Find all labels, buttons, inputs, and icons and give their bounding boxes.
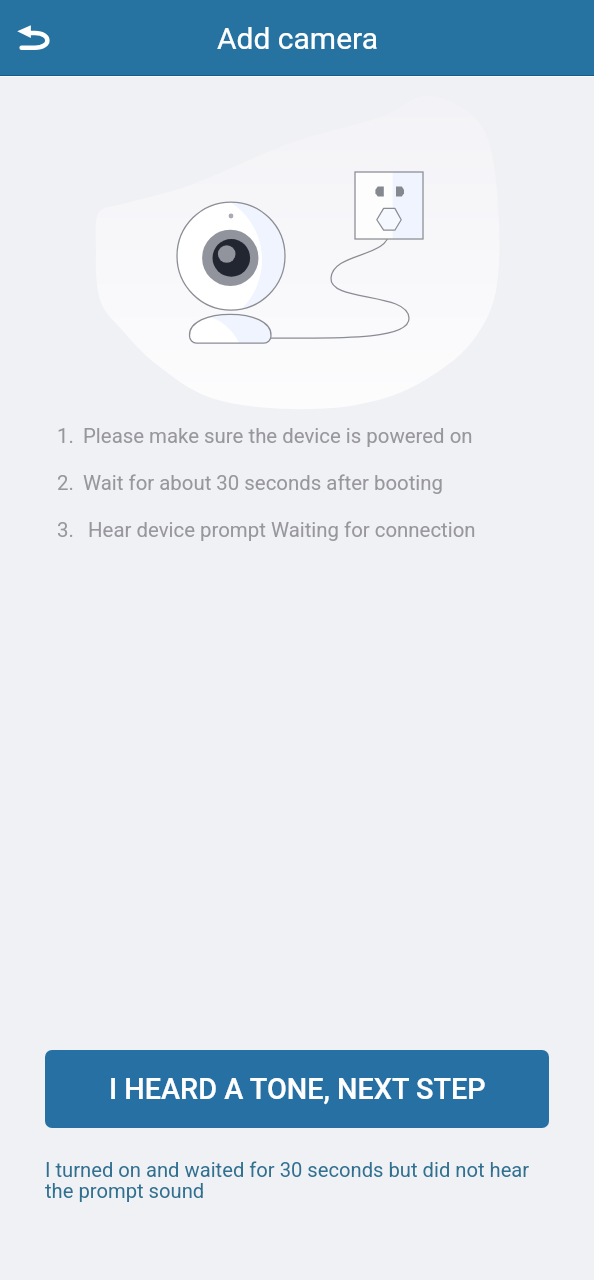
staticText: I HEARD A TONE, NEXT STEP [109,1072,486,1106]
button[interactable]: I HEARD A TONE, NEXT STEP [45,1050,549,1128]
button[interactable]: I turned on and waited for 30 seconds bu… [45,1158,546,1203]
staticText: Wait for about 30 seconds after booting [83,471,444,495]
staticText: Please make sure the device is powered o… [83,424,473,448]
staticText: Add camera [217,21,378,56]
staticText: 1. [57,424,74,448]
staticText: 3. [57,518,74,542]
staticText: 2. [57,471,74,495]
staticText: Hear device prompt Waiting for connectio… [83,518,476,542]
staticText: I turned on and waited for 30 seconds bu… [45,1158,546,1203]
button[interactable]: Back [0,0,66,66]
